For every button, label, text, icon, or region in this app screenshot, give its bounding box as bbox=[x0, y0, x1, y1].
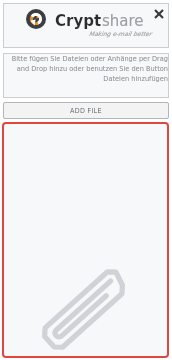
staticText: Bitte fügen Sie Dateien oder Anhänge per… bbox=[6, 55, 168, 83]
staticText: Making e-mail better bbox=[89, 30, 152, 37]
staticText: share bbox=[102, 12, 144, 29]
staticText: ADD FILE bbox=[70, 107, 102, 114]
staticText: Crypt bbox=[55, 12, 102, 29]
button[interactable]: ADD FILE bbox=[3, 102, 169, 119]
button[interactable]: Close bbox=[151, 6, 166, 21]
